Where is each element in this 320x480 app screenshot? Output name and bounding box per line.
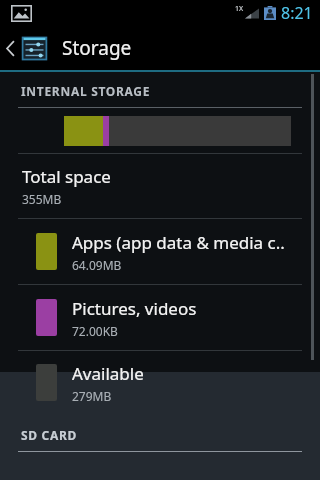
staticText: 72.00KB [72,323,118,339]
staticText: Apps (app data & media c.. [72,231,285,254]
button[interactable]: Available [0,351,320,414]
staticText: INTERNAL STORAGE [21,83,151,99]
button[interactable]: Apps (app data & media c.. [0,219,320,284]
staticText: 64.09MB [72,257,122,273]
button[interactable]: Pictures, videos [0,285,320,350]
staticText: 1X [235,4,244,14]
staticText: Storage [62,35,132,61]
staticText: 355MB [22,191,62,207]
staticText: 8:21 [281,2,313,24]
staticText: Total space [22,165,111,188]
staticText: SD CARD [21,427,78,443]
button[interactable]: Navigate up [0,26,51,70]
staticText: 279MB [72,388,112,404]
staticText: Pictures, videos [72,297,197,320]
staticText: Available [72,362,144,385]
button[interactable]: Total space [0,154,320,218]
